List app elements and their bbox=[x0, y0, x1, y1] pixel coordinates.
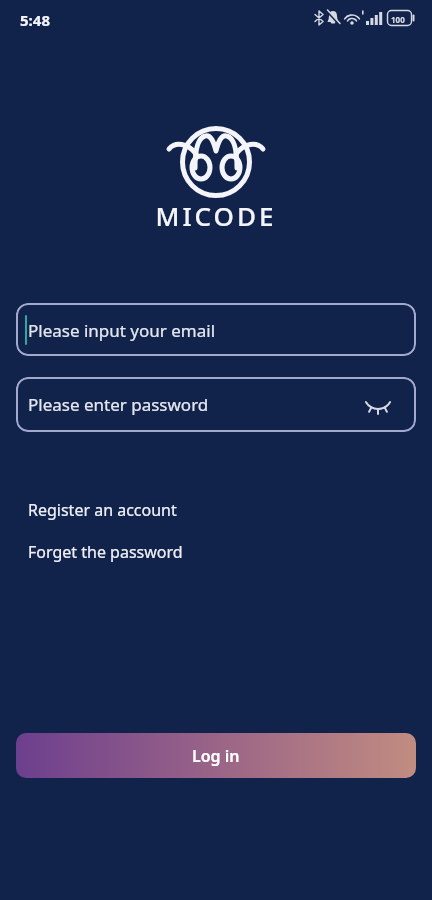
button[interactable]: Please input your email bbox=[16, 303, 416, 356]
button[interactable]: Please enter password bbox=[16, 377, 416, 432]
staticText: Register an account bbox=[28, 499, 177, 521]
staticText: Please enter password bbox=[28, 393, 209, 416]
button[interactable]: Forget the password bbox=[28, 541, 183, 563]
staticText: 5:48 bbox=[20, 10, 50, 30]
button[interactable]: Register an account bbox=[28, 499, 177, 521]
staticText: 100 bbox=[391, 14, 405, 25]
staticText: Forget the password bbox=[28, 541, 183, 563]
staticText: Log in bbox=[192, 745, 240, 767]
button[interactable] bbox=[364, 391, 392, 419]
button[interactable]: Log in bbox=[16, 733, 416, 778]
staticText: Please input your email bbox=[28, 319, 216, 342]
staticText: MICODE bbox=[0, 198, 432, 233]
